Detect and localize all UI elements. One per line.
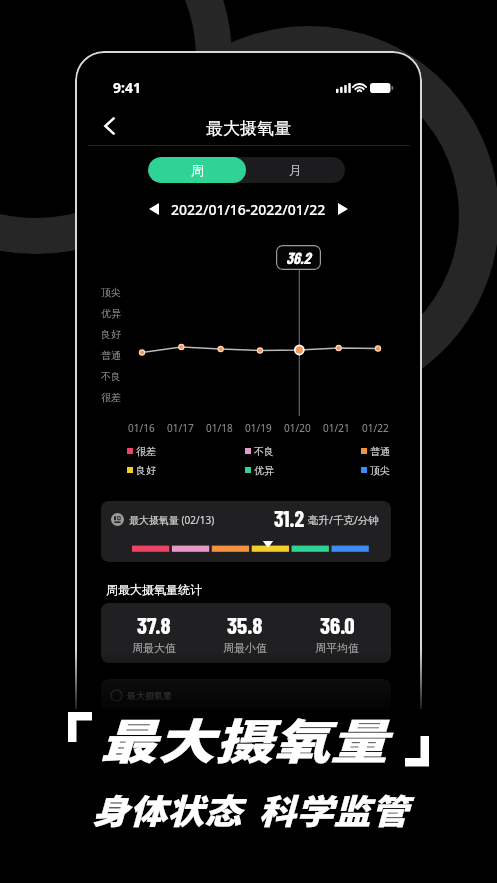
staticText: 良好: [136, 464, 156, 477]
button[interactable]: Next week: [333, 199, 353, 219]
staticText: 36.0: [320, 611, 355, 639]
staticText: 顶尖: [370, 464, 390, 477]
button[interactable]: 月: [246, 157, 345, 183]
staticText: 普通: [101, 349, 121, 362]
staticText: 最大摄氧量: [206, 118, 291, 139]
staticText: 最大摄氧量: [127, 690, 172, 701]
staticText: 顶尖: [101, 286, 121, 299]
staticText: 35.8: [227, 611, 263, 639]
button[interactable]: Back: [95, 111, 124, 140]
staticText: 01/19: [245, 421, 272, 435]
staticText: 优异: [101, 307, 121, 320]
staticText: 周: [191, 162, 204, 178]
staticText: 月: [289, 162, 302, 178]
staticText: 最大摄氧量 (02/13): [129, 513, 215, 527]
staticText: 身体状态 科学监管: [92, 785, 409, 834]
staticText: 9:41: [113, 78, 141, 97]
staticText: 普通: [370, 445, 390, 458]
staticText: 优异: [254, 464, 274, 477]
staticText: 01/18: [206, 421, 233, 435]
staticText: 01/22: [362, 421, 389, 435]
staticText: 01/16: [128, 421, 155, 435]
button[interactable]: 周: [148, 157, 246, 183]
button[interactable]: Previous week: [144, 199, 164, 219]
button[interactable]: 最大摄氧量: [111, 679, 391, 711]
staticText: 36.2: [286, 248, 311, 267]
staticText: 很差: [101, 391, 121, 404]
staticText: 很差: [136, 445, 156, 458]
staticText: 01/17: [167, 421, 194, 435]
staticText: 周最大摄氧量统计: [106, 582, 202, 597]
staticText: 01/20: [284, 421, 311, 435]
staticText: 01/21: [323, 421, 350, 435]
staticText: 最大摄氧量: [100, 704, 388, 773]
staticText: 2022/01/16-2022/01/22: [171, 200, 326, 219]
staticText: 37.8: [137, 611, 171, 639]
staticText: 不良: [254, 445, 274, 458]
staticText: 周最小值: [223, 641, 267, 655]
staticText: 良好: [101, 328, 121, 341]
staticText: 毫升/千克/分钟: [308, 513, 379, 527]
staticText: 周平均值: [315, 641, 359, 655]
staticText: 周最大值: [132, 641, 176, 655]
staticText: 不良: [101, 370, 121, 383]
staticText: 31.2: [274, 505, 305, 531]
button[interactable]: 最大摄氧量 (02/13): [101, 501, 391, 562]
